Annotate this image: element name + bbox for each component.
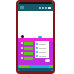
button[interactable] (36, 51, 46, 53)
button[interactable]: Menu (18, 4, 53, 11)
button[interactable] (36, 43, 46, 45)
button[interactable] (45, 59, 50, 62)
button[interactable] (36, 47, 46, 49)
button[interactable] (36, 55, 46, 57)
other: Profile (21, 35, 24, 38)
